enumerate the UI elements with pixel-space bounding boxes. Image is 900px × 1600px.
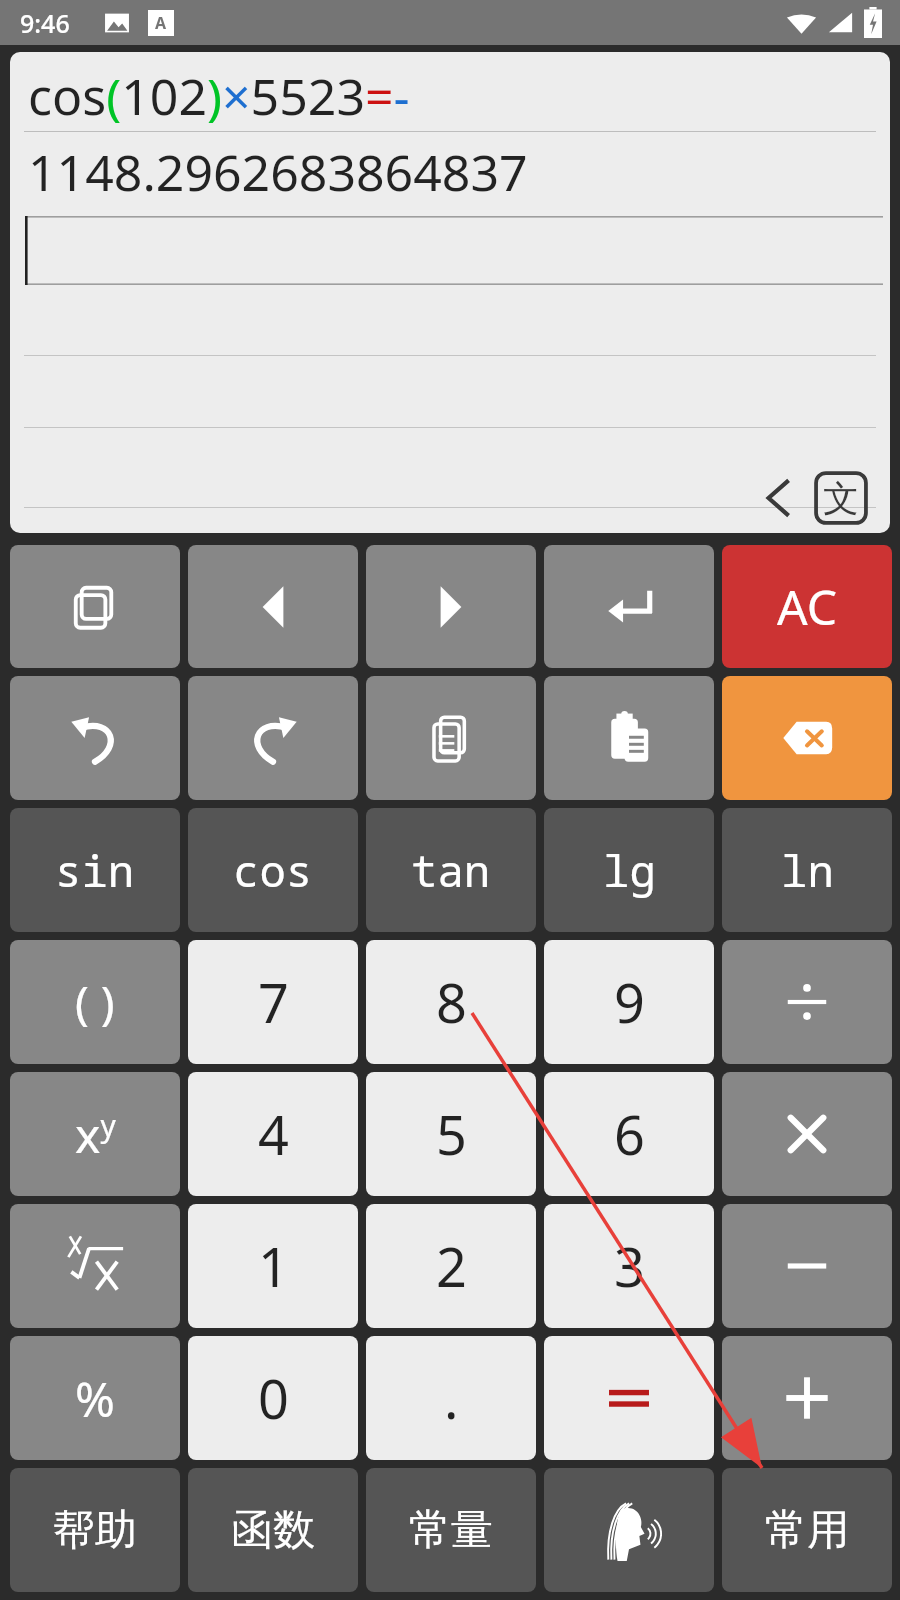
button[interactable]: Windows bbox=[10, 545, 180, 668]
button[interactable]: 常量 bbox=[366, 1468, 536, 1592]
staticText: 6 bbox=[614, 1097, 645, 1171]
button[interactable]: 0 bbox=[188, 1336, 358, 1460]
staticText: 帮助 bbox=[53, 1504, 137, 1557]
button[interactable]: ( ) bbox=[10, 940, 180, 1064]
button[interactable]: 9 bbox=[544, 940, 714, 1064]
staticText: 常量 bbox=[409, 1504, 493, 1557]
button[interactable]: Power bbox=[10, 1072, 180, 1196]
button[interactable]: AC bbox=[722, 545, 892, 668]
staticText: xy bbox=[75, 1102, 116, 1167]
staticText: 9:46 bbox=[20, 6, 70, 40]
button[interactable]: sin bbox=[10, 808, 180, 932]
button[interactable]: Backspace bbox=[722, 676, 892, 800]
staticText: ln bbox=[781, 840, 834, 900]
staticText: 4 bbox=[258, 1097, 289, 1171]
button[interactable]: Paste bbox=[544, 676, 714, 800]
staticText: AC bbox=[777, 574, 838, 639]
button[interactable]: Minus bbox=[722, 1204, 892, 1328]
button[interactable]: 2 bbox=[366, 1204, 536, 1328]
staticText: 文 bbox=[823, 476, 859, 521]
button[interactable]: 8 bbox=[366, 940, 536, 1064]
staticText: 0 bbox=[258, 1361, 289, 1435]
button[interactable]: tan bbox=[366, 808, 536, 932]
button[interactable]: Nth root bbox=[10, 1204, 180, 1328]
button[interactable]: 1 bbox=[188, 1204, 358, 1328]
staticText: tan bbox=[411, 840, 491, 900]
button[interactable]: 5 bbox=[366, 1072, 536, 1196]
staticText: sin bbox=[55, 840, 135, 900]
staticText: 5 bbox=[436, 1097, 467, 1171]
button[interactable]: 帮助 bbox=[10, 1468, 180, 1592]
staticText: 2 bbox=[436, 1229, 467, 1303]
staticText: A bbox=[155, 12, 167, 34]
button[interactable]: 常用 bbox=[722, 1468, 892, 1592]
staticText: 1148.2962683864837 bbox=[28, 138, 528, 206]
button[interactable]: cos(102)×5523=- bbox=[10, 52, 890, 533]
staticText: 常用 bbox=[765, 1504, 849, 1557]
button[interactable]: Plus bbox=[722, 1336, 892, 1460]
button[interactable]: Voice input bbox=[544, 1468, 714, 1592]
button[interactable] bbox=[25, 216, 883, 285]
button[interactable]: . bbox=[366, 1336, 536, 1460]
button[interactable]: Cursor left bbox=[188, 545, 358, 668]
staticText: 7 bbox=[258, 965, 289, 1039]
button[interactable]: Enter bbox=[544, 545, 714, 668]
staticText: 函数 bbox=[231, 1504, 315, 1557]
button[interactable]: 7 bbox=[188, 940, 358, 1064]
staticText: cos bbox=[233, 840, 313, 900]
button[interactable]: Redo bbox=[188, 676, 358, 800]
button[interactable]: 3 bbox=[544, 1204, 714, 1328]
button[interactable]: 6 bbox=[544, 1072, 714, 1196]
button[interactable]: ln bbox=[722, 808, 892, 932]
staticText: 9 bbox=[614, 965, 645, 1039]
button[interactable]: Language bbox=[812, 469, 870, 527]
button[interactable]: Equals bbox=[544, 1336, 714, 1460]
staticText: 1 bbox=[258, 1229, 289, 1303]
button[interactable]: lg bbox=[544, 808, 714, 932]
button[interactable]: cos bbox=[188, 808, 358, 932]
button[interactable]: Undo bbox=[10, 676, 180, 800]
staticText: cos(102)×5523=- bbox=[28, 62, 410, 130]
button[interactable]: Multiply bbox=[722, 1072, 892, 1196]
button[interactable]: Copy bbox=[366, 676, 536, 800]
button[interactable]: Cursor right bbox=[366, 545, 536, 668]
staticText: % bbox=[75, 1366, 115, 1431]
button[interactable]: % bbox=[10, 1336, 180, 1460]
button[interactable]: Previous bbox=[752, 471, 806, 525]
button[interactable]: 4 bbox=[188, 1072, 358, 1196]
staticText: 3 bbox=[614, 1229, 645, 1303]
button[interactable]: 函数 bbox=[188, 1468, 358, 1592]
staticText: lg bbox=[603, 840, 656, 900]
staticText: 8 bbox=[436, 965, 467, 1039]
staticText: . bbox=[444, 1361, 459, 1435]
staticText: ( ) bbox=[75, 971, 115, 1034]
button[interactable]: Divide bbox=[722, 940, 892, 1064]
